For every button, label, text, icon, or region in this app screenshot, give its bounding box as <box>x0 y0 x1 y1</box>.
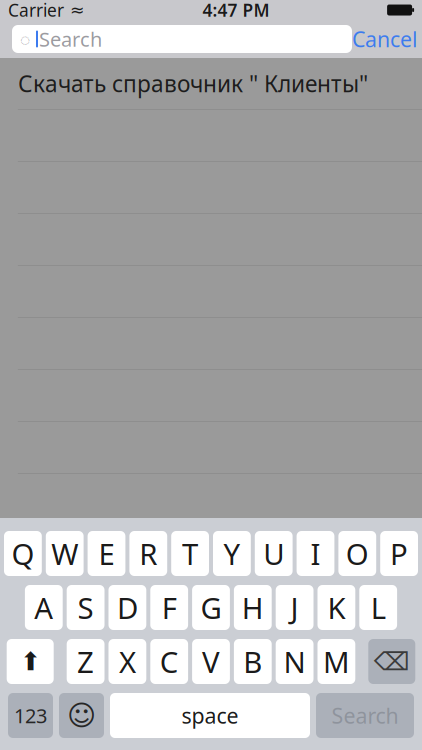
staticText: Скачать справочник " Клиенты" <box>18 68 368 98</box>
button[interactable]: K <box>317 585 355 630</box>
staticText: space <box>181 701 238 730</box>
button[interactable]: space <box>110 693 310 738</box>
staticText: S <box>78 588 94 627</box>
button[interactable]: E <box>88 531 125 576</box>
staticText: R <box>139 534 157 573</box>
button[interactable]: V <box>192 639 230 684</box>
button[interactable]: S <box>67 585 104 630</box>
staticText: G <box>200 588 221 627</box>
button[interactable]: L <box>359 585 397 630</box>
staticText: 4:47 PM <box>202 0 269 21</box>
staticText: E <box>98 534 114 573</box>
staticText: F <box>162 588 177 627</box>
button[interactable]: P <box>380 531 418 576</box>
staticText: H <box>242 588 264 627</box>
staticText: ☺ <box>67 700 96 731</box>
button[interactable]: 123 <box>8 693 53 738</box>
staticText: Carrier <box>8 0 64 21</box>
button[interactable]: U <box>255 531 293 576</box>
staticText: 123 <box>14 702 47 729</box>
button[interactable]: W <box>46 531 84 576</box>
button[interactable]: G <box>192 585 230 630</box>
staticText: Search <box>331 701 398 730</box>
staticText: Z <box>77 642 94 681</box>
button[interactable]: ☺ <box>59 693 104 738</box>
button[interactable]: Search <box>316 693 414 738</box>
staticText: P <box>390 534 408 573</box>
button[interactable]: J <box>276 585 313 630</box>
staticText: L <box>371 588 386 627</box>
staticText: B <box>243 642 262 681</box>
staticText: Q <box>11 534 34 573</box>
button[interactable]: R <box>129 531 167 576</box>
staticText: W <box>51 534 78 573</box>
button[interactable]: O <box>338 531 376 576</box>
staticText: Y <box>223 534 240 573</box>
button[interactable]: Скачать справочник " Клиенты" <box>0 58 422 110</box>
button[interactable]: T <box>171 531 209 576</box>
button[interactable]: ⌫ <box>368 639 415 684</box>
staticText: X <box>119 642 136 681</box>
button[interactable]: Cancel <box>352 25 418 53</box>
button[interactable]: F <box>150 585 188 630</box>
staticText: T <box>182 534 198 573</box>
button[interactable]: ⬆ <box>7 639 54 684</box>
staticText: O <box>346 534 369 573</box>
staticText: C <box>160 642 179 681</box>
button[interactable]: D <box>108 585 146 630</box>
button[interactable]: M <box>317 639 355 684</box>
button[interactable]: I <box>297 531 334 576</box>
staticText: ≈ <box>64 0 85 20</box>
button[interactable]: Z <box>67 639 104 684</box>
staticText: M <box>323 642 350 681</box>
button[interactable]: H <box>234 585 272 630</box>
staticText: ⬆ <box>20 647 41 676</box>
staticText: K <box>327 588 345 627</box>
staticText: Cancel <box>352 25 418 53</box>
staticText: ◌ <box>20 27 30 50</box>
button[interactable]: A <box>25 585 63 630</box>
button[interactable]: C <box>150 639 188 684</box>
staticText: N <box>284 642 306 681</box>
staticText: ⌫ <box>374 647 410 676</box>
staticText: J <box>291 588 299 627</box>
staticText: A <box>34 588 53 627</box>
button[interactable]: X <box>108 639 146 684</box>
staticText: Search <box>39 26 102 52</box>
button[interactable]: B <box>234 639 272 684</box>
button[interactable]: Y <box>213 531 251 576</box>
button[interactable]: Q <box>4 531 42 576</box>
staticText: D <box>117 588 138 627</box>
staticText: V <box>202 642 220 681</box>
staticText: U <box>263 534 284 573</box>
staticText: I <box>310 534 320 573</box>
button[interactable]: N <box>276 639 313 684</box>
